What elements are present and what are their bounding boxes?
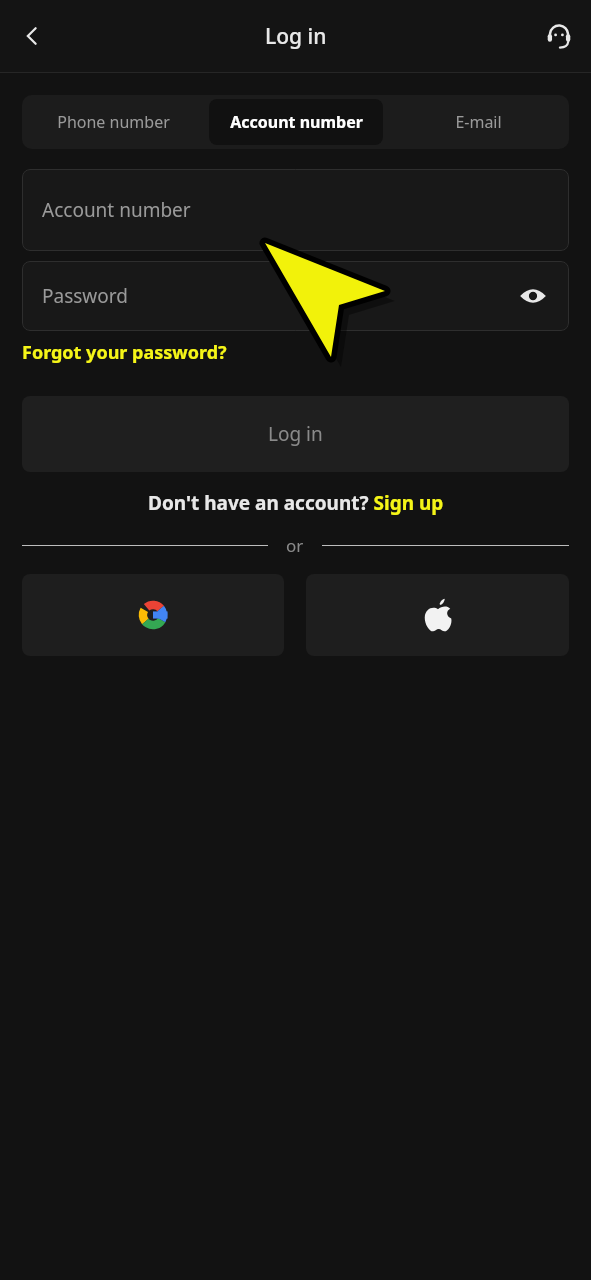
staticText: E-mail xyxy=(455,111,502,133)
button[interactable]: Password xyxy=(22,261,569,331)
staticText: Account number xyxy=(42,197,191,223)
staticText: Log in xyxy=(268,421,323,447)
staticText: Password xyxy=(42,283,128,309)
staticText: Forgot your password? xyxy=(22,340,227,365)
staticText: Phone number xyxy=(57,111,170,133)
button[interactable]: Customer support xyxy=(535,12,583,60)
staticText: or xyxy=(286,534,304,556)
button[interactable]: Sign in with Google xyxy=(22,574,284,656)
button[interactable]: Don't have an account? Sign up xyxy=(148,490,444,516)
button[interactable]: Sign in with Apple xyxy=(306,574,569,656)
button[interactable]: E-mail xyxy=(391,99,565,145)
button[interactable]: Forgot your password? xyxy=(22,340,227,365)
staticText: Account number xyxy=(230,111,363,133)
button[interactable]: Account number xyxy=(22,169,569,251)
button[interactable]: Show password xyxy=(511,274,555,318)
button[interactable]: Phone number xyxy=(26,99,201,145)
button[interactable]: Log in xyxy=(22,396,569,472)
button[interactable]: Account number xyxy=(209,99,383,145)
button[interactable]: Back xyxy=(8,12,56,60)
staticText: Log in xyxy=(265,22,327,51)
